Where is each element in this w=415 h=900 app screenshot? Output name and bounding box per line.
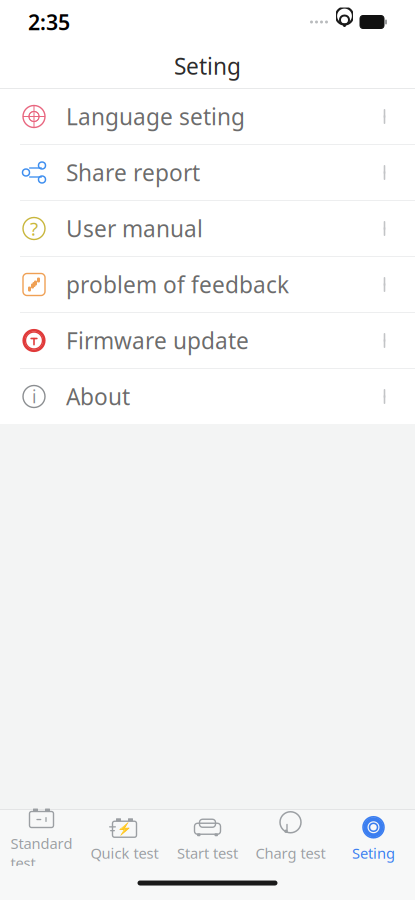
staticText: 2:35	[28, 8, 70, 36]
button[interactable]: Start test	[166, 807, 249, 869]
staticText: ⚡	[117, 822, 132, 836]
button[interactable]: i	[0, 369, 415, 424]
button[interactable]: Seting	[332, 807, 415, 869]
button[interactable]: ⚡	[83, 807, 166, 869]
staticText: problem of feedback	[66, 269, 289, 299]
button[interactable]: Charg test	[249, 807, 332, 869]
button[interactable]: Share report	[0, 145, 415, 201]
staticText: i	[32, 385, 36, 408]
staticText: Standard test	[10, 833, 72, 872]
staticText: User manual	[66, 213, 203, 243]
button[interactable]: Firmware update	[0, 313, 415, 369]
staticText: Language seting	[66, 101, 245, 131]
staticText: Seting	[352, 843, 395, 863]
staticText: Share report	[66, 157, 200, 187]
button[interactable]: ?	[0, 201, 415, 257]
staticText: Seting	[174, 51, 241, 81]
button[interactable]: problem of feedback	[0, 257, 415, 313]
staticText: About	[66, 381, 130, 411]
staticText: Firmware update	[66, 325, 249, 355]
button[interactable]: Standard test	[0, 797, 83, 878]
staticText: Start test	[177, 843, 238, 863]
staticText: Charg test	[255, 843, 325, 863]
button[interactable]: Language seting	[0, 89, 415, 145]
staticText: ?	[30, 216, 38, 241]
staticText: Quick test	[90, 843, 158, 863]
